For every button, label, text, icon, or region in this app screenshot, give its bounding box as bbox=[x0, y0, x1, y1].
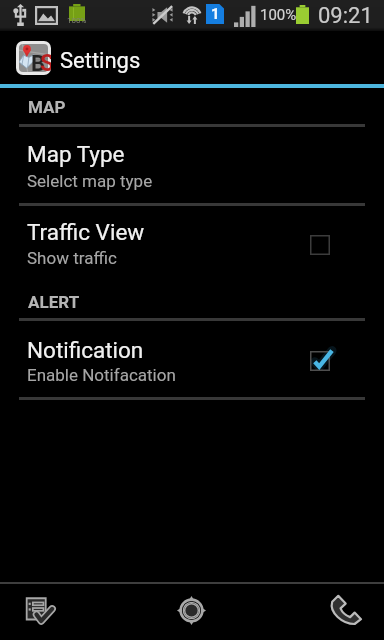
staticText: 100% bbox=[67, 16, 87, 25]
staticText: Selelct map type bbox=[27, 171, 153, 191]
button[interactable]: Location bbox=[128, 582, 256, 640]
staticText: MAP bbox=[28, 97, 66, 117]
staticText: ALERT bbox=[28, 292, 80, 312]
button[interactable]: B bbox=[0, 31, 384, 84]
button[interactable] bbox=[0, 205, 384, 283]
staticText: Show traffic bbox=[27, 248, 117, 268]
button[interactable] bbox=[0, 126, 384, 204]
staticText: Settings bbox=[60, 48, 141, 74]
staticText: Notification bbox=[27, 337, 144, 363]
staticText: Map Type bbox=[27, 141, 125, 167]
staticText: B bbox=[31, 51, 46, 75]
staticText: 100% bbox=[260, 6, 297, 24]
staticText: 09:21 bbox=[318, 3, 373, 29]
button[interactable]: Notification toggle bbox=[288, 329, 352, 393]
button[interactable]: Checklist bbox=[0, 582, 128, 640]
button[interactable]: Call bbox=[256, 582, 384, 640]
button[interactable] bbox=[0, 320, 384, 398]
staticText: Traffic View bbox=[27, 219, 145, 245]
staticText: 1 bbox=[211, 5, 220, 23]
staticText: S bbox=[40, 50, 51, 75]
button[interactable]: Traffic View toggle bbox=[288, 213, 352, 277]
staticText: Enable Notifacation bbox=[27, 365, 176, 385]
